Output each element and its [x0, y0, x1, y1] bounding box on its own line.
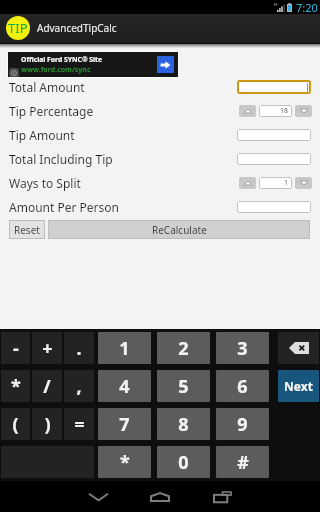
staticText: ReCalculate [152, 223, 207, 237]
button[interactable]: Next [278, 370, 319, 402]
staticText: www.ford.com/sync [21, 65, 91, 75]
staticText: # [237, 450, 249, 475]
button[interactable]: Back [75, 481, 121, 512]
staticText: 8 [178, 412, 189, 437]
button[interactable]: * [1, 370, 30, 402]
button[interactable]: 6 [216, 370, 269, 402]
staticText: ( [12, 412, 19, 437]
button[interactable]: Decrease [295, 105, 312, 117]
staticText: Total Including Tip [9, 151, 113, 167]
staticText: Reset [14, 223, 40, 237]
button[interactable]: # [216, 446, 269, 478]
staticText: 2 [178, 336, 189, 361]
staticText: 0 [178, 450, 189, 475]
button[interactable]: Decrease [295, 177, 312, 189]
staticText: 9 [237, 412, 248, 437]
staticText: * [120, 450, 130, 475]
button[interactable]: 18 [259, 105, 292, 117]
staticText: Tip Percentage [9, 103, 94, 119]
button[interactable] [237, 153, 311, 165]
staticText: 3 [237, 336, 248, 361]
staticText: 7:20 [296, 0, 318, 14]
staticText: , [76, 374, 82, 399]
staticText: / [43, 374, 51, 399]
button[interactable]: . [64, 332, 94, 364]
button[interactable]: 4 [98, 370, 151, 402]
staticText: 4 [119, 374, 130, 399]
staticText: + [42, 336, 53, 361]
button[interactable]: Recents [199, 481, 245, 512]
staticText: Amount Per Person [9, 199, 119, 215]
button[interactable]: , [64, 370, 94, 402]
button[interactable]: ReCalculate [48, 220, 310, 239]
staticText: = [74, 412, 85, 437]
staticText: AdvancedTipCalc [37, 21, 117, 35]
staticText: 6 [237, 374, 248, 399]
button[interactable]: Increase [239, 105, 256, 117]
button[interactable]: Home [137, 481, 183, 512]
button[interactable]: * [98, 446, 151, 478]
staticText: 18 [280, 106, 289, 116]
button[interactable]: 7 [98, 408, 151, 440]
button[interactable]: + [32, 332, 62, 364]
staticText: TIP [8, 19, 28, 37]
button[interactable]: 5 [157, 370, 210, 402]
button[interactable]: 1 [98, 332, 151, 364]
staticText: ) [44, 412, 51, 437]
button[interactable]: Official Ford SYNC® Site [8, 52, 178, 77]
button[interactable]: Increase [239, 177, 256, 189]
staticText: 5 [178, 374, 189, 399]
staticText: Next [284, 378, 313, 394]
button[interactable]: 9 [216, 408, 269, 440]
button[interactable]: 3 [216, 332, 269, 364]
button[interactable]: 8 [157, 408, 210, 440]
staticText: Official Ford SYNC® Site [21, 55, 103, 64]
button[interactable] [237, 201, 311, 213]
button[interactable] [237, 129, 311, 141]
button[interactable]: ( [1, 408, 30, 440]
button[interactable]: = [64, 408, 94, 440]
button[interactable]: Reset [9, 220, 45, 239]
button[interactable]: - [1, 332, 30, 364]
staticText: * [11, 374, 21, 399]
button[interactable]: 1 [259, 177, 292, 189]
staticText: Total Amount [9, 79, 85, 95]
staticText: Tip Amount [9, 127, 75, 143]
staticText: 1 [284, 178, 289, 188]
button[interactable]: Delete [278, 332, 319, 364]
staticText: Ways to Split [9, 175, 81, 191]
button[interactable]: 0 [157, 446, 210, 478]
staticText: - [13, 336, 19, 361]
button[interactable]: / [32, 370, 62, 402]
staticText: 1 [119, 336, 130, 361]
staticText: . [76, 336, 82, 361]
button[interactable]: 2 [157, 332, 210, 364]
staticText: 7 [119, 412, 130, 437]
button[interactable]: ) [32, 408, 62, 440]
button[interactable] [237, 80, 311, 94]
